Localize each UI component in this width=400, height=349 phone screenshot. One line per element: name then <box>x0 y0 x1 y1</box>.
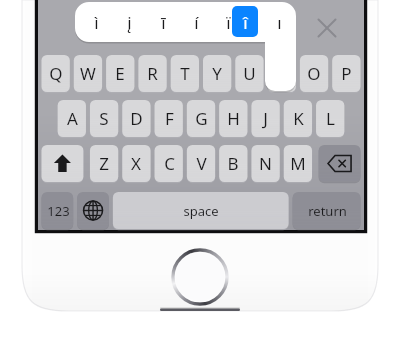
staticText: P <box>341 62 352 85</box>
staticText: S <box>99 107 109 130</box>
button[interactable]: X <box>122 145 150 182</box>
button[interactable]: Switch keyboard <box>77 192 109 229</box>
staticText: V <box>196 152 207 175</box>
staticText: A <box>67 107 78 130</box>
staticText: ì <box>94 11 99 34</box>
button[interactable]: Home <box>173 250 227 304</box>
button[interactable]: R <box>138 55 166 92</box>
button[interactable]: W <box>74 55 102 92</box>
staticText: C <box>164 152 175 175</box>
button[interactable]: A <box>58 100 86 137</box>
button[interactable]: Y <box>203 55 231 92</box>
staticText: î <box>243 11 248 34</box>
staticText: return <box>308 202 347 220</box>
button[interactable]: B <box>219 145 247 182</box>
button[interactable]: L <box>316 100 344 137</box>
button[interactable]: J <box>251 100 279 137</box>
staticText: ï <box>226 11 231 34</box>
staticText: ı <box>277 11 282 34</box>
button[interactable]: K <box>284 100 312 137</box>
staticText: ī <box>161 11 166 34</box>
button[interactable]: Close keyboard <box>311 12 343 44</box>
staticText: D <box>130 107 143 130</box>
button[interactable]: P <box>332 55 360 92</box>
staticText: F <box>165 107 174 130</box>
staticText: í <box>194 11 199 34</box>
staticText: M <box>290 152 306 175</box>
staticText: Z <box>99 152 109 175</box>
button[interactable]: F <box>155 100 183 137</box>
staticText: L <box>326 107 335 130</box>
button[interactable]: S <box>90 100 118 137</box>
button[interactable]: G <box>187 100 215 137</box>
staticText: 123 <box>47 202 70 220</box>
staticText: N <box>259 152 272 175</box>
button[interactable]: T <box>171 55 199 92</box>
button[interactable]: Q <box>42 55 70 92</box>
staticText: space <box>183 202 219 220</box>
button[interactable]: H <box>219 100 247 137</box>
staticText: į <box>127 11 132 34</box>
staticText: Q <box>49 62 63 85</box>
staticText: K <box>293 107 304 130</box>
button[interactable]: M <box>284 145 312 182</box>
staticText: Y <box>212 62 222 85</box>
button[interactable]: Z <box>90 145 118 182</box>
staticText: B <box>227 152 239 175</box>
staticText: R <box>147 62 158 85</box>
button[interactable]: C <box>155 145 183 182</box>
staticText: W <box>80 62 96 85</box>
staticText: H <box>227 107 240 130</box>
button[interactable]: Shift <box>42 145 84 182</box>
button[interactable]: 123 <box>42 192 74 229</box>
button[interactable]: E <box>106 55 134 92</box>
staticText: O <box>307 62 321 85</box>
staticText: E <box>115 62 125 85</box>
staticText: T <box>180 62 190 85</box>
button[interactable]: return <box>293 192 361 229</box>
button[interactable]: Backspace <box>319 145 361 182</box>
staticText: X <box>131 152 141 175</box>
button[interactable]: space <box>113 192 289 229</box>
button[interactable]: V <box>187 145 215 182</box>
button[interactable]: N <box>251 145 279 182</box>
button[interactable]: D <box>122 100 150 137</box>
staticText: J <box>263 107 268 130</box>
button[interactable]: O <box>300 55 328 92</box>
staticText: U <box>243 62 256 85</box>
staticText: G <box>195 107 208 130</box>
button[interactable]: U <box>235 55 263 92</box>
